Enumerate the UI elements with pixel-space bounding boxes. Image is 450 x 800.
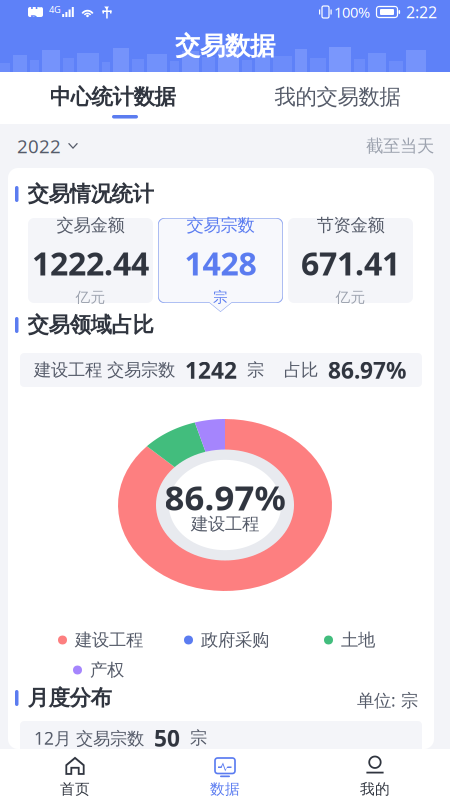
button[interactable]: 首页 [0,749,150,800]
staticText: 86.97% [328,355,406,385]
staticText: 100% [334,2,370,22]
staticText: 建设工程 [191,513,259,535]
staticText: 土地 [341,629,375,651]
staticText: 亿元 [335,288,365,306]
button[interactable]: 我的 [300,749,450,800]
staticText: 86.97% [164,474,285,520]
staticText: 交易情况统计 [27,181,153,207]
staticText: 首页 [60,780,90,798]
button[interactable]: 节资金额 [288,218,413,312]
staticText: 宗 占比 [237,359,328,381]
staticText: 交易金额 [56,215,124,236]
staticText: 1242 [185,355,237,385]
button[interactable]: 交易金额 [28,218,153,312]
staticText: 交易领域占比 [27,312,153,338]
staticText: HD [30,0,41,26]
staticText: 2022 [17,134,61,158]
staticText: 我的交易数据 [274,84,400,110]
staticText: 建设工程 交易宗数 [34,359,185,381]
staticText: 50 [154,723,180,753]
staticText: 交易宗数 [186,215,254,236]
staticText: 1222.44 [32,242,149,284]
button[interactable]: 数据 [150,749,300,800]
staticText: 宗 [180,727,207,749]
staticText: 宗 [213,288,228,306]
staticText: 月度分布 [27,685,111,711]
staticText: 4G [49,3,61,16]
staticText: 数据 [210,780,240,798]
staticText: 我的 [360,780,390,798]
staticText: 亿元 [75,288,105,306]
staticText: 产权 [90,659,124,681]
button[interactable]: 中心统计数据 [0,72,225,124]
staticText: 政府采购 [201,629,269,651]
staticText: 中心统计数据 [49,84,175,110]
staticText: 单位: 宗 [357,688,418,711]
staticText: 建设工程 [75,629,143,651]
staticText: 交易数据 [175,30,275,61]
button[interactable]: 我的交易数据 [225,72,450,124]
staticText: 节资金额 [316,215,384,236]
staticText: 2:22 [406,1,437,23]
button[interactable]: 交易宗数 [158,218,283,312]
button[interactable]: 2022 [0,124,120,168]
staticText: 12月 交易宗数 [34,726,154,749]
staticText: 671.41 [301,242,400,284]
staticText: 截至当天 [366,135,434,157]
staticText: 1428 [184,242,256,284]
